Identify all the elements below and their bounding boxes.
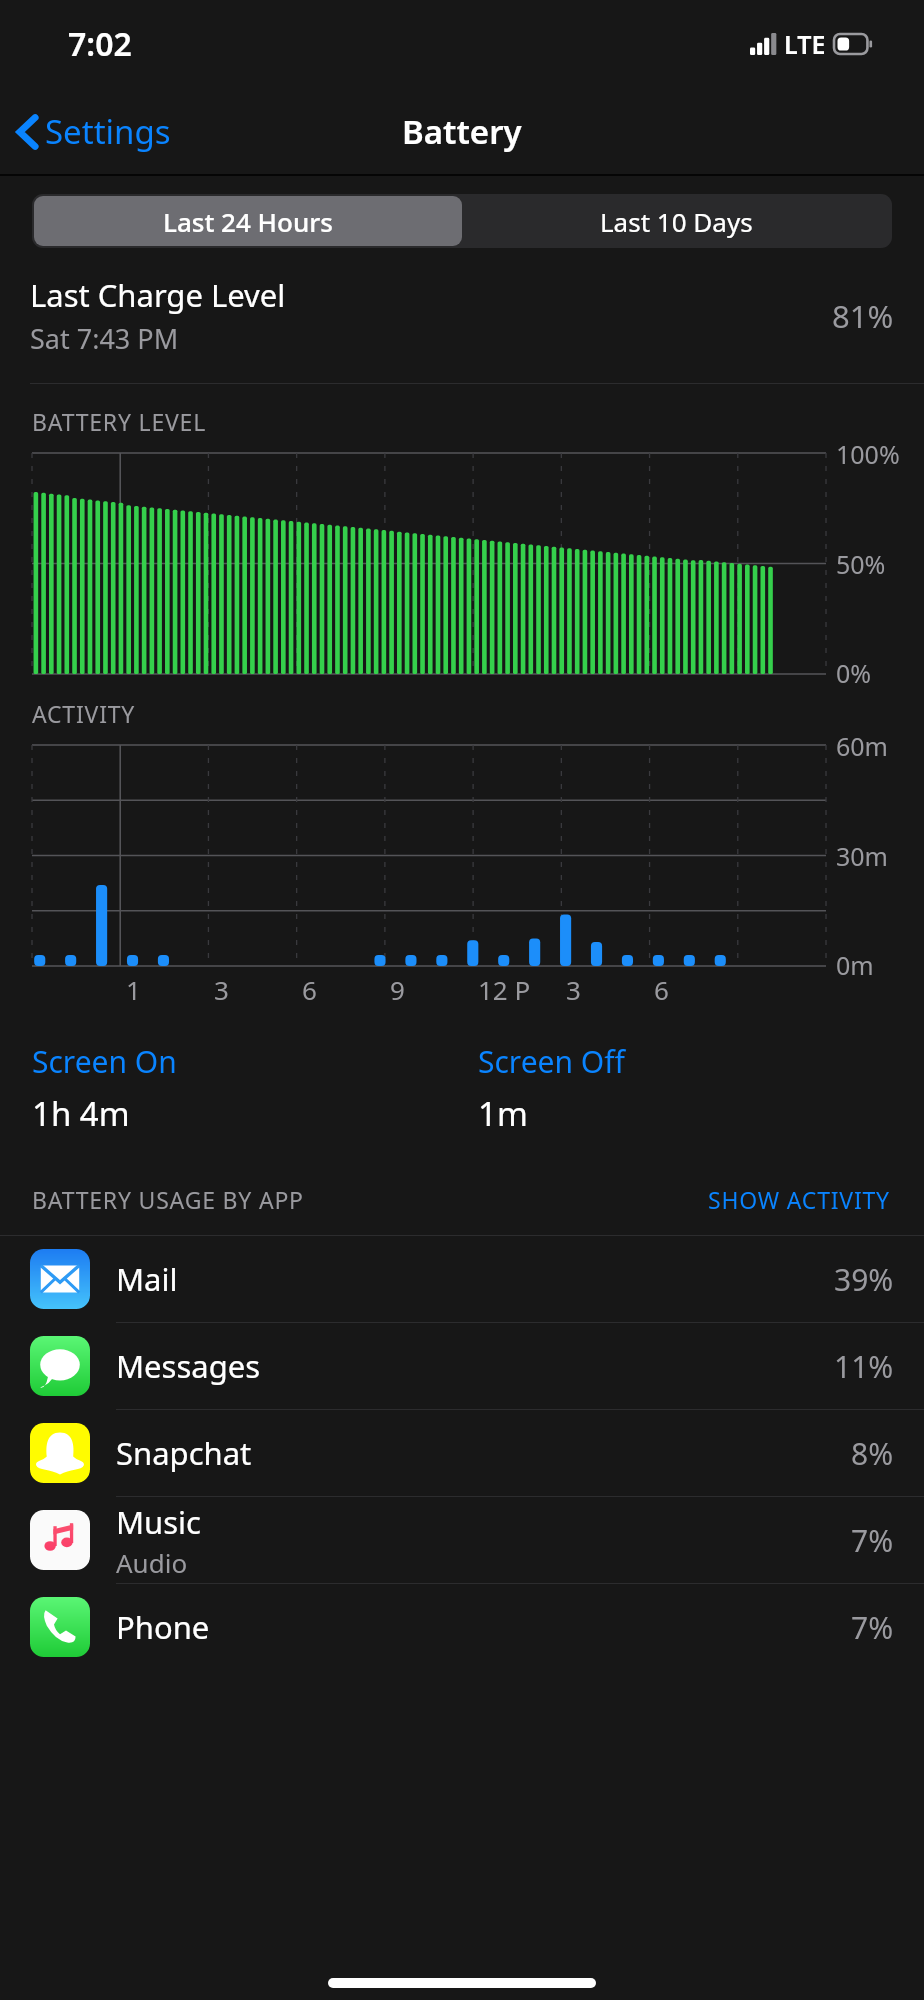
button[interactable]: Music — [0, 1497, 924, 1583]
staticText: 8% — [851, 1433, 894, 1474]
button[interactable]: Last 24 Hours — [34, 196, 462, 246]
staticText: 12 P — [478, 972, 531, 1007]
staticText: Audio — [116, 1545, 188, 1580]
staticText: 1m — [478, 1091, 528, 1136]
staticText: 30m — [836, 839, 888, 873]
staticText: Phone — [116, 1606, 210, 1648]
staticText: 81% — [832, 295, 894, 337]
staticText: 7:02 — [68, 22, 132, 66]
staticText: 3 — [214, 972, 229, 1007]
button[interactable]: Mail — [0, 1236, 924, 1322]
staticText: Last Charge Level — [30, 274, 286, 316]
staticText: 6 — [654, 972, 669, 1007]
staticText: Screen Off — [478, 1041, 625, 1082]
other: Home indicator — [328, 1978, 596, 1988]
staticText: Messages — [116, 1345, 261, 1387]
staticText: 9 — [390, 972, 405, 1007]
button[interactable]: Snapchat — [0, 1410, 924, 1496]
staticText: SHOW ACTIVITY — [708, 1184, 890, 1215]
staticText: 11% — [834, 1346, 894, 1387]
staticText: Sat 7:43 PM — [30, 320, 179, 357]
staticText: 1 — [126, 972, 141, 1007]
staticText: 3 — [566, 972, 581, 1007]
staticText: 6 — [302, 972, 317, 1007]
staticText: Music — [116, 1501, 202, 1543]
staticText: Last 10 Days — [600, 204, 753, 239]
staticText: 7% — [851, 1607, 894, 1648]
staticText: BATTERY USAGE BY APP — [32, 1184, 304, 1215]
staticText: 0% — [836, 656, 872, 690]
button[interactable]: SHOW ACTIVITY — [704, 1180, 894, 1219]
staticText: 50% — [836, 547, 886, 581]
staticText: 60m — [836, 729, 888, 763]
staticText: LTE — [784, 27, 826, 61]
staticText: 1h 4m — [32, 1091, 130, 1136]
staticText: 0m — [836, 948, 874, 982]
staticText: Last 24 Hours — [163, 204, 333, 239]
button[interactable]: Messages — [0, 1323, 924, 1409]
staticText: Settings — [45, 109, 171, 154]
button[interactable]: Phone — [0, 1584, 924, 1670]
staticText: ACTIVITY — [32, 698, 136, 729]
staticText: Mail — [116, 1258, 178, 1300]
button[interactable]: Settings — [0, 99, 183, 164]
staticText: 39% — [834, 1259, 894, 1300]
button[interactable]: Last 10 Days — [462, 196, 890, 246]
staticText: 100% — [836, 437, 900, 471]
staticText: 7% — [851, 1520, 894, 1561]
staticText: Snapchat — [116, 1432, 252, 1474]
staticText: Screen On — [32, 1041, 177, 1082]
staticText: BATTERY LEVEL — [32, 406, 207, 437]
staticText: Battery — [402, 109, 522, 154]
